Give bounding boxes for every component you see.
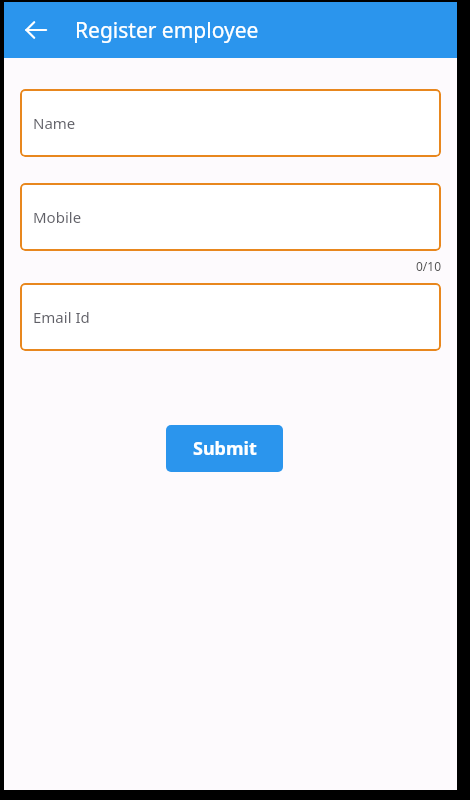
button[interactable]: Name <box>20 89 441 157</box>
staticText: Submit <box>193 436 257 461</box>
button[interactable]: Mobile <box>20 183 441 251</box>
staticText: 0/10 <box>20 258 441 274</box>
staticText: Mobile <box>33 207 82 227</box>
staticText: Email Id <box>33 307 90 327</box>
staticText: Name <box>33 113 76 133</box>
button[interactable]: Email Id <box>20 283 441 351</box>
button[interactable]: Submit <box>166 425 283 472</box>
staticText: Register employee <box>75 16 259 45</box>
button[interactable]: Back <box>14 8 58 52</box>
